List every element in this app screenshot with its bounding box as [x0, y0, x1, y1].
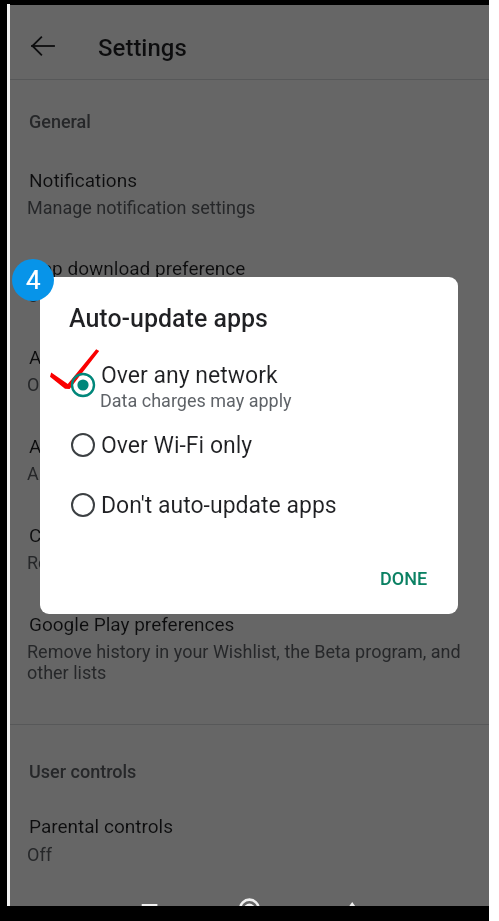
staticText: Parental controls — [29, 815, 173, 837]
staticText: Don't auto-update apps — [101, 492, 337, 519]
staticText: App download preference — [29, 257, 246, 279]
staticText: Auto-update apps — [29, 346, 179, 368]
staticText: DONE — [380, 568, 428, 589]
staticText: Over Wi-Fi only — [101, 432, 253, 459]
staticText: General — [29, 111, 91, 132]
button[interactable] — [40, 359, 458, 411]
staticText: All networks — [27, 463, 126, 484]
staticText: Over any network — [101, 362, 278, 389]
staticText: Remove searches you have done — [27, 552, 289, 573]
button[interactable] — [40, 419, 458, 471]
staticText: Notifications — [29, 169, 138, 191]
button[interactable]: Bottom navigation — [9, 886, 489, 906]
staticText: Clear local search history — [29, 524, 242, 546]
staticText: Over any network — [27, 285, 166, 306]
button[interactable]: DONE — [366, 560, 442, 596]
staticText: 4 — [26, 265, 41, 295]
button[interactable] — [40, 479, 458, 531]
staticText: Google Play preferences — [29, 613, 235, 635]
staticText: Off — [27, 844, 52, 865]
staticText: Auto-update apps — [69, 304, 268, 333]
staticText: User controls — [29, 761, 137, 782]
staticText: Auto-play videos — [29, 435, 169, 457]
staticText: Settings — [98, 34, 187, 62]
button[interactable]: Back — [32, 35, 54, 57]
staticText: Remove history in your Wishlist, the Bet… — [27, 641, 467, 683]
staticText: Over any network — [27, 374, 166, 395]
staticText: Manage notification settings — [27, 197, 256, 218]
staticText: Data charges may apply — [100, 390, 292, 411]
